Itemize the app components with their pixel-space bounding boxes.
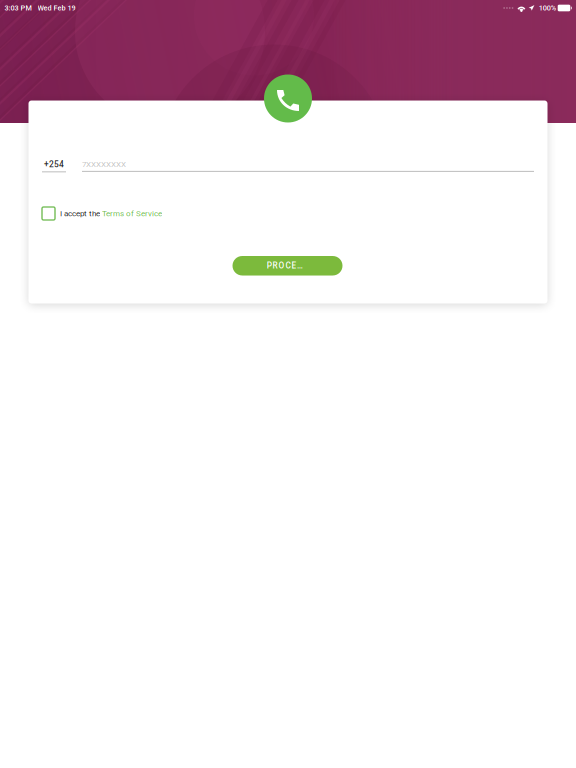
staticText: PROCEED <box>267 261 308 271</box>
staticText: 7XXXXXXXX <box>82 159 126 169</box>
staticText: 3:03 PM <box>4 4 31 12</box>
staticText: 100% <box>539 4 556 12</box>
button[interactable]: I accept the <box>42 206 172 220</box>
staticText: Terms of Service <box>102 209 162 218</box>
staticText: Wed Feb 19 <box>37 4 75 12</box>
button[interactable]: PROCEED <box>232 256 342 275</box>
staticText: +254 <box>44 159 64 169</box>
staticText: I accept the <box>60 209 102 218</box>
